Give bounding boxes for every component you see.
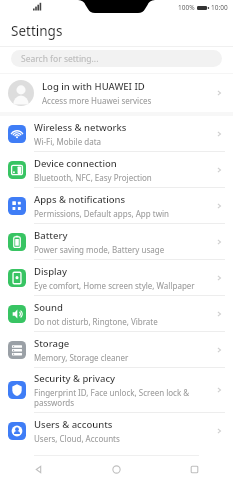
button[interactable]: Back xyxy=(0,455,77,484)
button[interactable]: Apps & notifications xyxy=(0,188,233,223)
staticText: Search for setting... xyxy=(21,53,99,65)
staticText: Display xyxy=(34,265,68,278)
button[interactable]: Log in with HUAWEI ID xyxy=(0,74,233,112)
staticText: Users & accounts xyxy=(34,418,113,431)
staticText: Power saving mode, Battery usage xyxy=(34,244,165,255)
staticText: 10:00 xyxy=(211,3,228,12)
staticText: Wi-Fi, Mobile data xyxy=(34,136,102,147)
button[interactable]: Display xyxy=(0,260,233,295)
button[interactable]: Battery xyxy=(0,224,233,259)
button[interactable]: Search for setting... xyxy=(11,50,222,67)
staticText: Storage xyxy=(34,337,70,350)
staticText: Memory, Storage cleaner xyxy=(34,352,129,363)
button[interactable]: Sound xyxy=(0,296,233,331)
staticText: Users, Cloud, Accounts xyxy=(34,433,120,444)
staticText: Wireless & networks xyxy=(34,121,127,134)
staticText: Fingerprint ID, Face unlock, Screen lock… xyxy=(34,387,190,408)
staticText: Do not disturb, Ringtone, Vibrate xyxy=(34,316,158,327)
staticText: Apps & notifications xyxy=(34,193,126,206)
staticText: 100% xyxy=(178,3,195,12)
staticText: Log in with HUAWEI ID xyxy=(42,80,145,93)
staticText: Security & privacy xyxy=(34,372,116,385)
button[interactable]: Security & privacy xyxy=(0,368,233,412)
staticText: Permissions, Default apps, App twin xyxy=(34,208,169,219)
button[interactable]: Recent apps xyxy=(155,455,233,484)
button[interactable]: Storage xyxy=(0,332,233,367)
staticText: Eye comfort, Home screen style, Wallpape… xyxy=(34,280,195,291)
button[interactable]: Users & accounts xyxy=(0,413,233,448)
staticText: Sound xyxy=(34,301,63,314)
button[interactable]: Device connection xyxy=(0,152,233,187)
staticText: Bluetooth, NFC, Easy Projection xyxy=(34,172,152,183)
button[interactable]: Wireless & networks xyxy=(0,116,233,151)
staticText: Settings xyxy=(11,22,63,40)
staticText: Access more Huawei services xyxy=(42,95,152,106)
button[interactable]: Home xyxy=(77,455,155,484)
staticText: Battery xyxy=(34,229,68,242)
staticText: Device connection xyxy=(34,157,117,170)
